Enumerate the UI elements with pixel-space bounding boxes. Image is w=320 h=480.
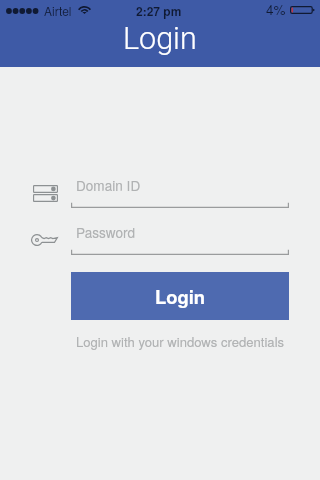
- staticText: Domain ID: [76, 175, 141, 194]
- button[interactable]: Domain ID: [0, 176, 320, 208]
- staticText: 4%: [266, 0, 286, 19]
- staticText: 2:27 pm: [136, 2, 182, 19]
- staticText: Airtel: [44, 2, 72, 19]
- staticText: Login: [155, 283, 206, 309]
- staticText: Password: [76, 222, 136, 241]
- button[interactable]: Login: [71, 272, 289, 320]
- button[interactable]: Password: [0, 223, 320, 255]
- staticText: Login: [123, 21, 197, 57]
- staticText: Login with your windows credentials: [71, 332, 289, 351]
